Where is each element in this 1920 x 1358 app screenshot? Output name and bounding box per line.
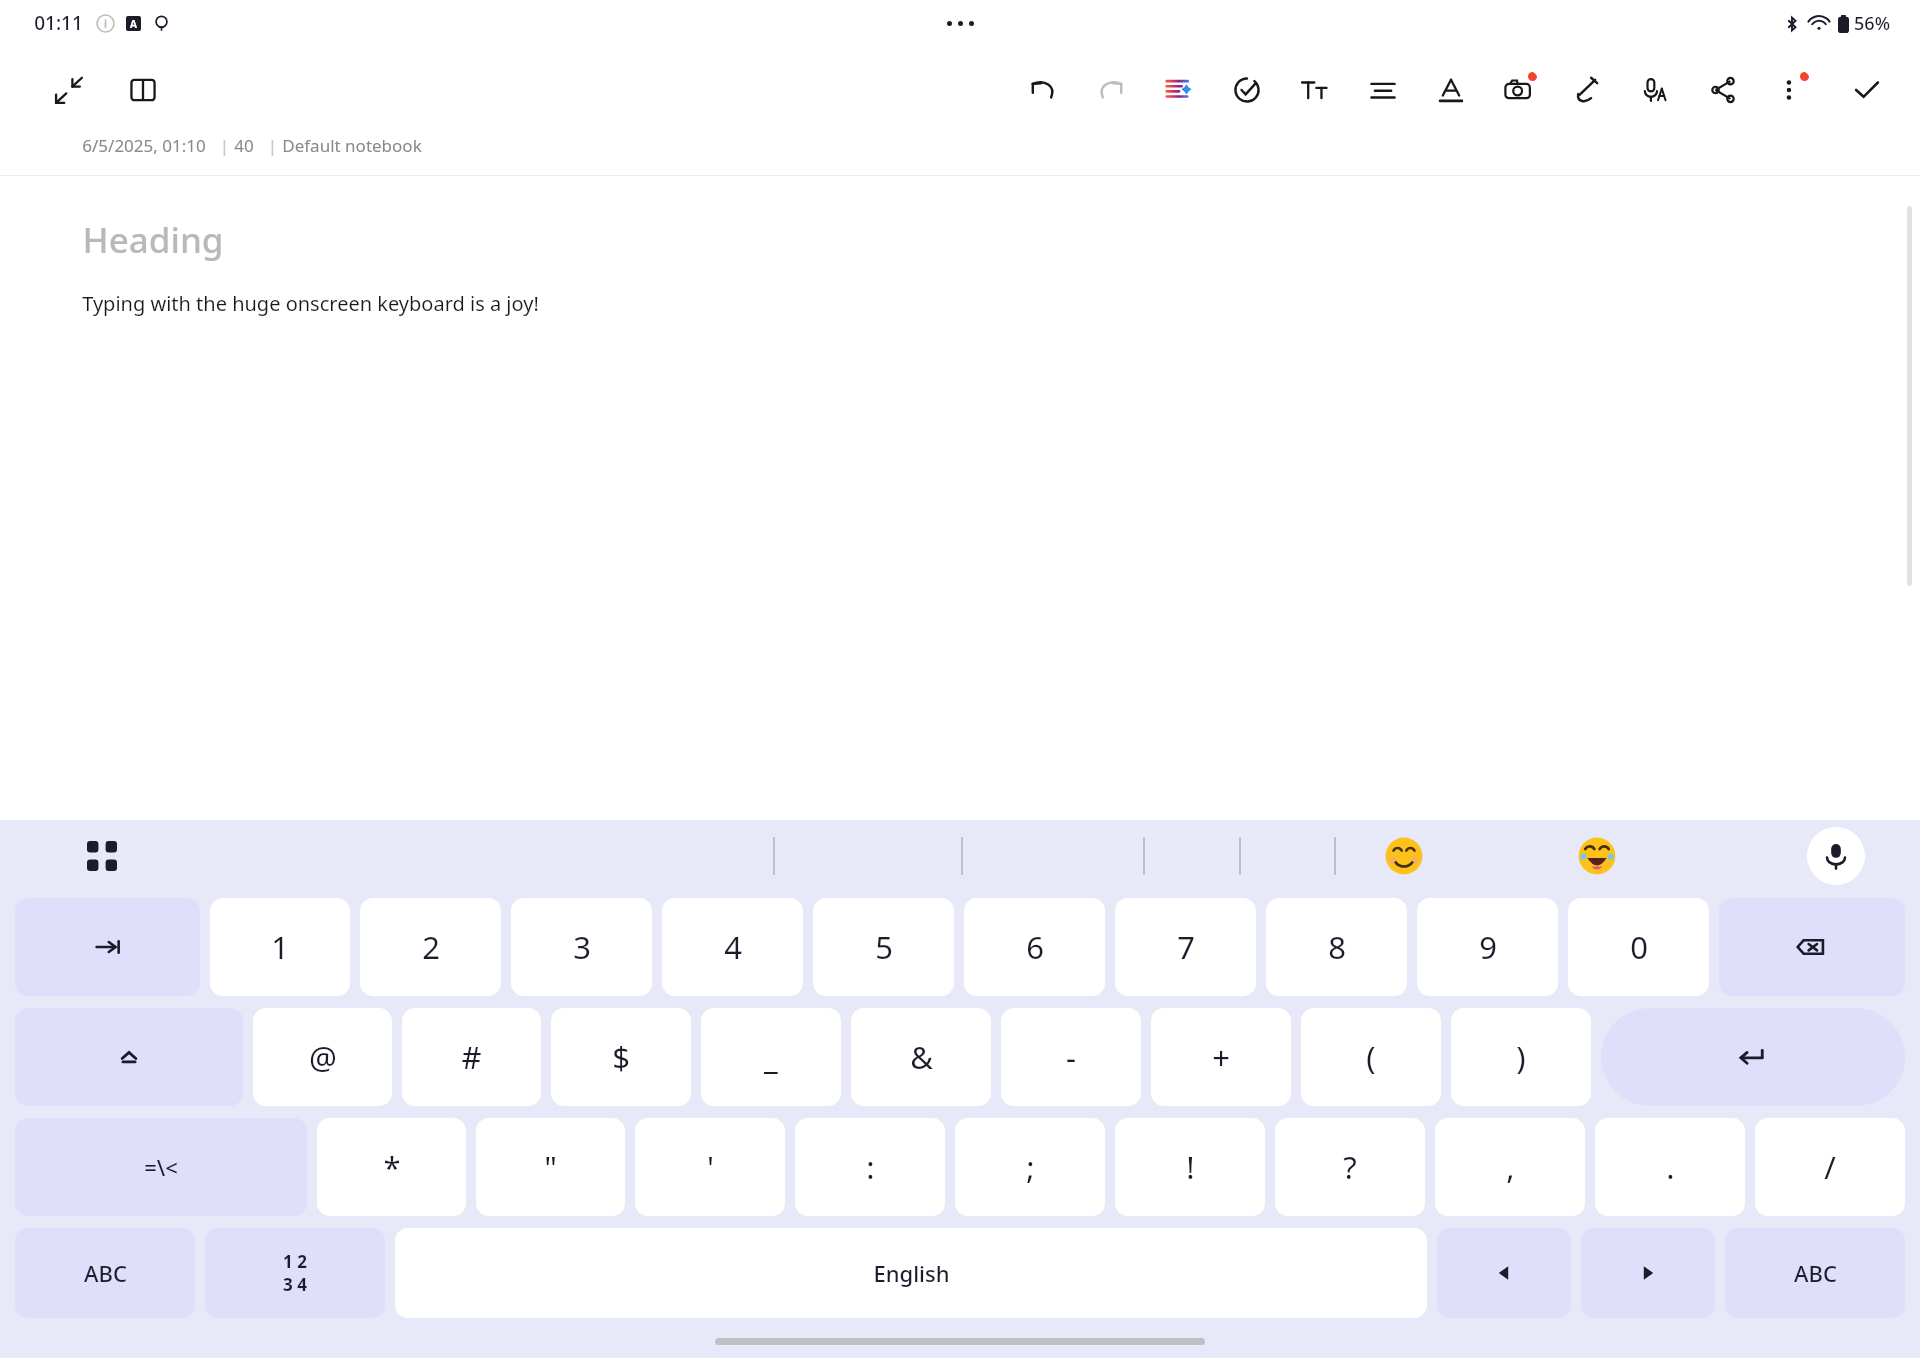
button[interactable]: - [1001,1008,1141,1106]
button[interactable]: Split view [120,67,166,113]
button[interactable]: Move right [1581,1228,1715,1318]
staticText: ! [1186,1146,1195,1188]
button[interactable]: Voice [1632,67,1678,113]
staticText: / [1824,1146,1836,1188]
button[interactable]: Redo [1088,67,1134,113]
button[interactable]: Camera [1496,67,1542,113]
staticText: Heading [82,216,224,264]
staticText: 5 [875,926,893,968]
staticText: - [1066,1036,1076,1078]
staticText: , [1506,1146,1515,1188]
button[interactable]: Tab [15,898,200,996]
button[interactable]: ' [635,1118,785,1216]
button[interactable]: / [1755,1118,1905,1216]
button[interactable]: ! [1115,1118,1265,1216]
button[interactable]: Shift [15,1008,243,1106]
button[interactable]: 3 [511,898,652,996]
staticText: 6 [1026,926,1044,968]
button[interactable]: 7 [1115,898,1256,996]
button[interactable]: More options [1768,67,1814,113]
button[interactable]: : [795,1118,945,1216]
button[interactable]: Keyboard modes [78,832,126,880]
button[interactable]: AI assist [1156,67,1202,113]
staticText: 3 4 [283,1273,307,1296]
button[interactable]: Text style [1292,67,1338,113]
button[interactable]: * [317,1118,466,1216]
button[interactable]: 6 [964,898,1105,996]
button[interactable]: ABC [1725,1228,1905,1318]
button[interactable]: 1 [210,898,350,996]
button[interactable]: 8 [1266,898,1407,996]
button[interactable]: English [395,1228,1427,1318]
button[interactable]: " [476,1118,625,1216]
staticText: : [866,1146,875,1188]
staticText: 56% [1854,11,1890,36]
button[interactable]: Underline [1428,67,1474,113]
button[interactable]: , [1435,1118,1585,1216]
button[interactable]: Enter [1601,1008,1905,1106]
staticText: 2 [422,926,440,968]
staticText: " [544,1146,557,1188]
button[interactable]: Checklist [1224,67,1270,113]
staticText: _ [764,1036,778,1078]
staticText: ABC [1794,1258,1837,1288]
button[interactable]: . [1595,1118,1745,1216]
staticText: 3 [573,926,591,968]
button[interactable]: ) [1451,1008,1591,1106]
staticText: ) [1516,1036,1526,1078]
button[interactable]: Draw [1564,67,1610,113]
staticText: | [206,134,234,157]
staticText: Default notebook [282,134,422,157]
staticText: 1 [271,926,289,968]
staticText: English [873,1258,950,1288]
button[interactable]: ABC [15,1228,195,1318]
staticText: & [910,1036,933,1078]
button[interactable]: Collapse [46,67,92,113]
button[interactable]: Numbers [205,1228,385,1318]
button[interactable]: 5 [813,898,954,996]
button[interactable]: 0 [1568,898,1709,996]
button[interactable]: Move left [1437,1228,1571,1318]
staticText: . [1666,1146,1675,1188]
button[interactable]: Voice input [1807,827,1865,885]
button[interactable]: 4 [662,898,803,996]
button[interactable]: _ [701,1008,841,1106]
button[interactable]: + [1151,1008,1291,1106]
button[interactable]: ( [1301,1008,1441,1106]
button[interactable]: $ [551,1008,691,1106]
button[interactable]: Undo [1020,67,1066,113]
button[interactable]: 2 [360,898,501,996]
staticText: ? [1343,1146,1357,1188]
staticText: =\< [144,1152,178,1182]
staticText: 1 2 [283,1250,307,1273]
staticText: # [461,1036,482,1078]
staticText: 8 [1328,926,1346,968]
staticText: Typing with the huge onscreen keyboard i… [82,290,539,317]
button[interactable]: Done [1844,67,1890,113]
staticText: ' [707,1146,714,1188]
staticText: $ [612,1036,630,1078]
staticText: * [383,1146,401,1188]
staticText: 7 [1177,926,1195,968]
button[interactable]: Paragraph [1360,67,1406,113]
button[interactable]: 9 [1417,898,1558,996]
staticText: 6/5/2025, 01:10 [82,134,206,157]
button[interactable]: Backspace [1719,898,1905,996]
button[interactable]: Laughing emoji [1569,828,1625,884]
button[interactable]: Smiling emoji [1376,828,1432,884]
button[interactable]: =\< [15,1118,307,1216]
staticText: + [1212,1036,1230,1078]
staticText: ABC [84,1258,127,1288]
button[interactable]: & [851,1008,991,1106]
staticText: 9 [1479,926,1497,968]
staticText: @ [309,1036,337,1078]
staticText: ; [1026,1146,1035,1188]
button[interactable]: Share [1700,67,1746,113]
button[interactable]: @ [253,1008,392,1106]
staticText: 01:11 [34,10,83,36]
button[interactable]: ? [1275,1118,1425,1216]
button[interactable]: ; [955,1118,1105,1216]
button[interactable]: # [402,1008,541,1106]
staticText: 40 [234,134,254,157]
staticText: A [130,17,137,31]
